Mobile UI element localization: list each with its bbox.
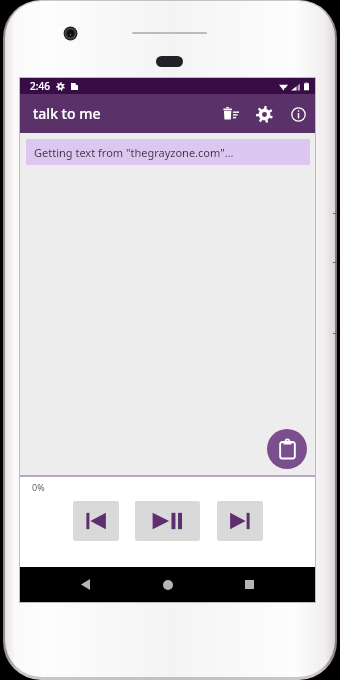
button[interactable]: Paste from clipboard	[267, 429, 307, 469]
staticText: 0%	[32, 481, 45, 493]
button[interactable]: Next	[217, 501, 263, 541]
button[interactable]: Clear list	[214, 97, 247, 130]
button[interactable]: Play Pause	[135, 501, 200, 541]
button[interactable]: About	[281, 97, 315, 131]
staticText: Getting text from "thegrayzone.com"…	[34, 145, 234, 160]
staticText: talk to me	[33, 104, 214, 123]
button[interactable]: Getting text from "thegrayzone.com"…	[26, 139, 310, 165]
button[interactable]: Home	[140, 567, 195, 602]
button[interactable]: Settings	[247, 97, 281, 131]
staticText: 2:46	[30, 79, 50, 93]
button[interactable]: Previous	[73, 501, 119, 541]
button[interactable]: Back	[58, 567, 113, 602]
button[interactable]: Recents	[222, 567, 277, 602]
